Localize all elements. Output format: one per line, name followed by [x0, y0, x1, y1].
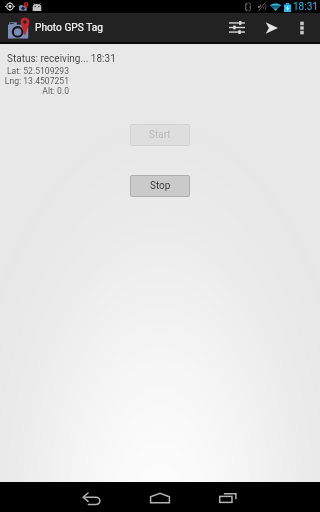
button[interactable]: More options [288, 13, 315, 42]
button[interactable]: Home [126, 482, 194, 512]
button[interactable]: Back [58, 482, 126, 512]
button[interactable]: Stop [130, 175, 190, 197]
staticText: Lat: 52.5109293 Lng: 13.4507251 Alt: 0.0 [0, 66, 69, 96]
staticText: Start [149, 129, 171, 141]
staticText: 18:31 [293, 1, 318, 13]
staticText: Status: receiving... 18:31 [7, 53, 116, 65]
staticText: Stop [150, 180, 171, 192]
button[interactable]: Recents [194, 482, 262, 512]
button[interactable]: Send [254, 13, 288, 42]
button[interactable]: Start [130, 124, 190, 146]
button[interactable]: Settings [220, 13, 254, 42]
staticText: Photo GPS Tag [35, 22, 103, 34]
